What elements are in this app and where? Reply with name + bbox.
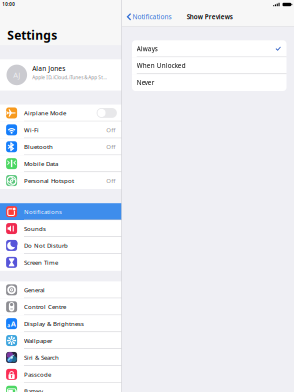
button[interactable]: Airplane Mode: [0, 104, 121, 121]
button[interactable]: Sounds: [0, 220, 121, 237]
staticText: Bluetooth: [24, 143, 53, 151]
staticText: Off: [106, 126, 115, 134]
button[interactable]: Screen Time: [0, 254, 121, 271]
staticText: Settings: [7, 27, 57, 43]
staticText: Alan Jones: [32, 64, 65, 73]
staticText: Never: [137, 78, 155, 87]
button[interactable]: Bluetooth: [0, 138, 121, 155]
staticText: Battery: [24, 387, 43, 392]
staticText: Display & Brightness: [24, 320, 84, 328]
staticText: AJ: [13, 70, 20, 80]
button[interactable]: Never: [132, 74, 286, 91]
staticText: General: [24, 286, 45, 294]
button[interactable]: Notifications: [0, 203, 121, 220]
button[interactable]: Siri & Search: [0, 349, 121, 366]
staticText: Control Centre: [24, 303, 66, 311]
button[interactable]: Wi-Fi: [0, 121, 121, 138]
button[interactable]: Battery: [0, 383, 121, 392]
staticText: Personal Hotspot: [24, 176, 74, 185]
staticText: Airplane Mode: [24, 109, 66, 117]
staticText: Mobile Data: [24, 160, 58, 168]
button[interactable]: Personal Hotspot: [0, 172, 121, 189]
button[interactable]: Notifications: [122, 12, 175, 22]
button[interactable]: a: [0, 315, 121, 332]
button[interactable]: Wallpaper: [0, 332, 121, 349]
button[interactable]: Always: [132, 40, 286, 57]
staticText: Wallpaper: [24, 336, 52, 345]
staticText: Apple ID, iCloud, iTunes & App St…: [32, 74, 107, 81]
staticText: 10:00: [2, 1, 15, 7]
staticText: Always: [137, 44, 158, 53]
staticText: Notifications: [133, 12, 172, 21]
staticText: Notifications: [24, 208, 62, 216]
button[interactable]: Mobile Data: [0, 155, 121, 172]
staticText: When Unlocked: [137, 61, 186, 70]
button[interactable]: Control Centre: [0, 298, 121, 315]
staticText: Do Not Disturb: [24, 241, 68, 250]
button[interactable]: AJ: [0, 59, 121, 90]
staticText: a: [7, 322, 10, 329]
button[interactable]: When Unlocked: [132, 57, 286, 74]
staticText: Off: [106, 143, 115, 151]
staticText: Off: [106, 176, 115, 185]
staticText: Sounds: [24, 224, 46, 233]
staticText: Screen Time: [24, 258, 58, 266]
staticText: Siri & Search: [24, 353, 59, 362]
button[interactable]: Do Not Disturb: [0, 237, 121, 254]
staticText: Passcode: [24, 370, 51, 378]
button[interactable]: Passcode: [0, 366, 121, 383]
staticText: Wi-Fi: [24, 126, 39, 134]
staticText: A: [11, 319, 16, 329]
button[interactable]: General: [0, 281, 121, 298]
staticText: Show Previews: [187, 12, 233, 21]
